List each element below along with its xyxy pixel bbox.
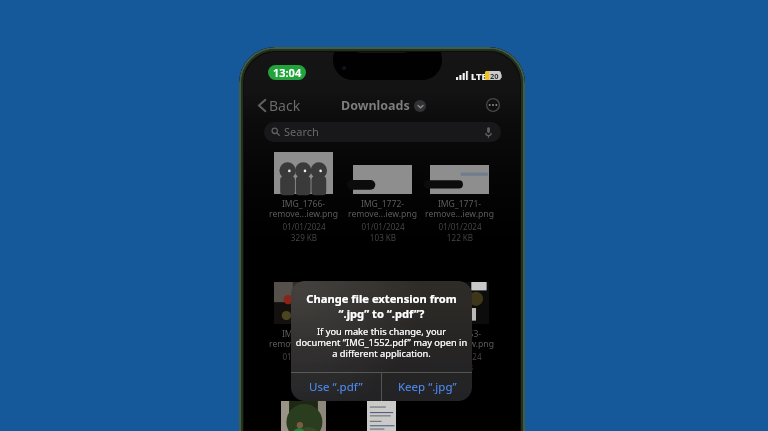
staticText: Keep “.jpg” xyxy=(398,379,457,395)
staticText: 01/01/2024 103 KB xyxy=(361,221,405,243)
button[interactable]: Back xyxy=(256,93,303,118)
staticText: 01/01/2024 188 KB xyxy=(361,351,405,373)
staticText: 01/01/2024 219 KB xyxy=(282,351,326,373)
staticText: LTE xyxy=(471,70,487,83)
staticText: IMG_1754- remove...iew.png xyxy=(348,328,417,350)
staticText: Back xyxy=(269,96,301,115)
staticText: 13:04 xyxy=(273,65,302,80)
staticText: Change file extension from “.jpg” to “.p… xyxy=(297,291,466,321)
staticText: Use “.pdf” xyxy=(309,379,363,395)
button[interactable]: Document preview xyxy=(367,401,396,431)
staticText: 01/01/2024 243 KB xyxy=(438,351,482,373)
staticText: 20 xyxy=(490,71,499,80)
staticText: IMG_1753- remove...iew.png xyxy=(425,328,494,350)
staticText: 01/01/2024 122 KB xyxy=(438,221,482,243)
button[interactable]: Search xyxy=(264,122,501,142)
button[interactable]: IMG_1766- remove...iew.png xyxy=(266,152,341,196)
button[interactable]: Keep “.jpg” xyxy=(382,373,472,401)
staticText: If you make this change, your document “… xyxy=(292,325,471,359)
staticText: Search xyxy=(284,124,319,139)
button[interactable]: IMG_1755- remove...iew.png xyxy=(266,282,341,326)
button[interactable]: Downloads xyxy=(341,97,426,114)
staticText: IMG_1755- remove...iew.png xyxy=(269,328,338,350)
button[interactable]: IMG_1753- remove...iew.png xyxy=(422,282,497,326)
staticText: IMG_1772- remove...iew.png xyxy=(348,198,417,220)
button[interactable]: IMG_1749 photo xyxy=(281,401,326,431)
button[interactable]: More options xyxy=(485,97,501,113)
staticText: Downloads xyxy=(341,97,410,114)
button[interactable]: IMG_1754- remove...iew.png xyxy=(345,282,420,326)
staticText: IMG_1771- remove...iew.png xyxy=(425,198,494,220)
staticText: 01/01/2024 329 KB xyxy=(282,221,326,243)
button[interactable]: IMG_1772- remove...iew.png xyxy=(345,152,420,196)
staticText: IMG_1766- remove...iew.png xyxy=(269,198,338,220)
button[interactable]: IMG_1771- remove...iew.png xyxy=(422,152,497,196)
button[interactable]: Use “.pdf” xyxy=(291,373,381,401)
